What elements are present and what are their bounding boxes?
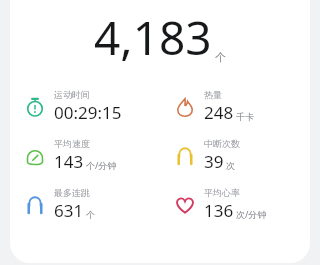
other: Calories [174,96,196,118]
staticText: 248 [204,101,234,124]
staticText: 143 [54,150,84,173]
staticText: 631 [54,199,84,222]
other: Exercise time [24,96,46,118]
button[interactable]: Calories [160,89,310,124]
staticText: 最多连跳 [54,187,90,198]
staticText: 热量 [204,89,222,100]
staticText: 千卡 [236,111,254,122]
other: Max consecutive jumps [24,194,46,216]
staticText: 平均速度 [54,138,90,149]
staticText: 136 [204,199,234,222]
other: Average speed [24,145,46,167]
button[interactable]: Average heart rate [160,187,310,222]
staticText: 中断次数 [204,138,240,149]
button[interactable]: Exercise time [10,89,160,124]
staticText: 00:29:15 [54,101,122,124]
staticText: 次/分钟 [236,208,267,220]
staticText: 个 [215,50,226,64]
staticText: 个 [86,209,95,220]
button[interactable]: Average speed [10,138,160,173]
button[interactable]: Interruptions [160,138,310,173]
button[interactable]: Max consecutive jumps [10,187,160,222]
staticText: 次 [226,160,235,171]
staticText: 个/分钟 [86,159,117,171]
staticText: 4,183 [94,6,212,69]
staticText: 39 [204,150,224,173]
staticText: 运动时间 [54,89,90,100]
other: Interruptions [174,145,196,167]
other: Average heart rate [174,194,196,216]
staticText: 平均心率 [204,187,240,198]
